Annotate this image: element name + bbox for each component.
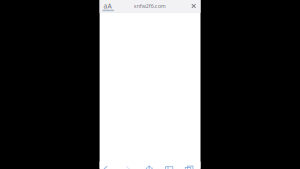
button[interactable]: Close: [189, 1, 199, 11]
staticText: xnfw2f6.com: [134, 2, 166, 9]
staticText: aA: [103, 1, 111, 10]
button[interactable]: Address: [100, 1, 200, 10]
button[interactable]: Bookmarks: [165, 166, 174, 169]
button[interactable]: Page settings: [101, 1, 114, 10]
button[interactable]: Back: [101, 166, 110, 169]
button[interactable]: Tabs: [185, 166, 194, 169]
button[interactable]: Share: [145, 166, 154, 169]
button[interactable]: Forward: [123, 166, 132, 169]
